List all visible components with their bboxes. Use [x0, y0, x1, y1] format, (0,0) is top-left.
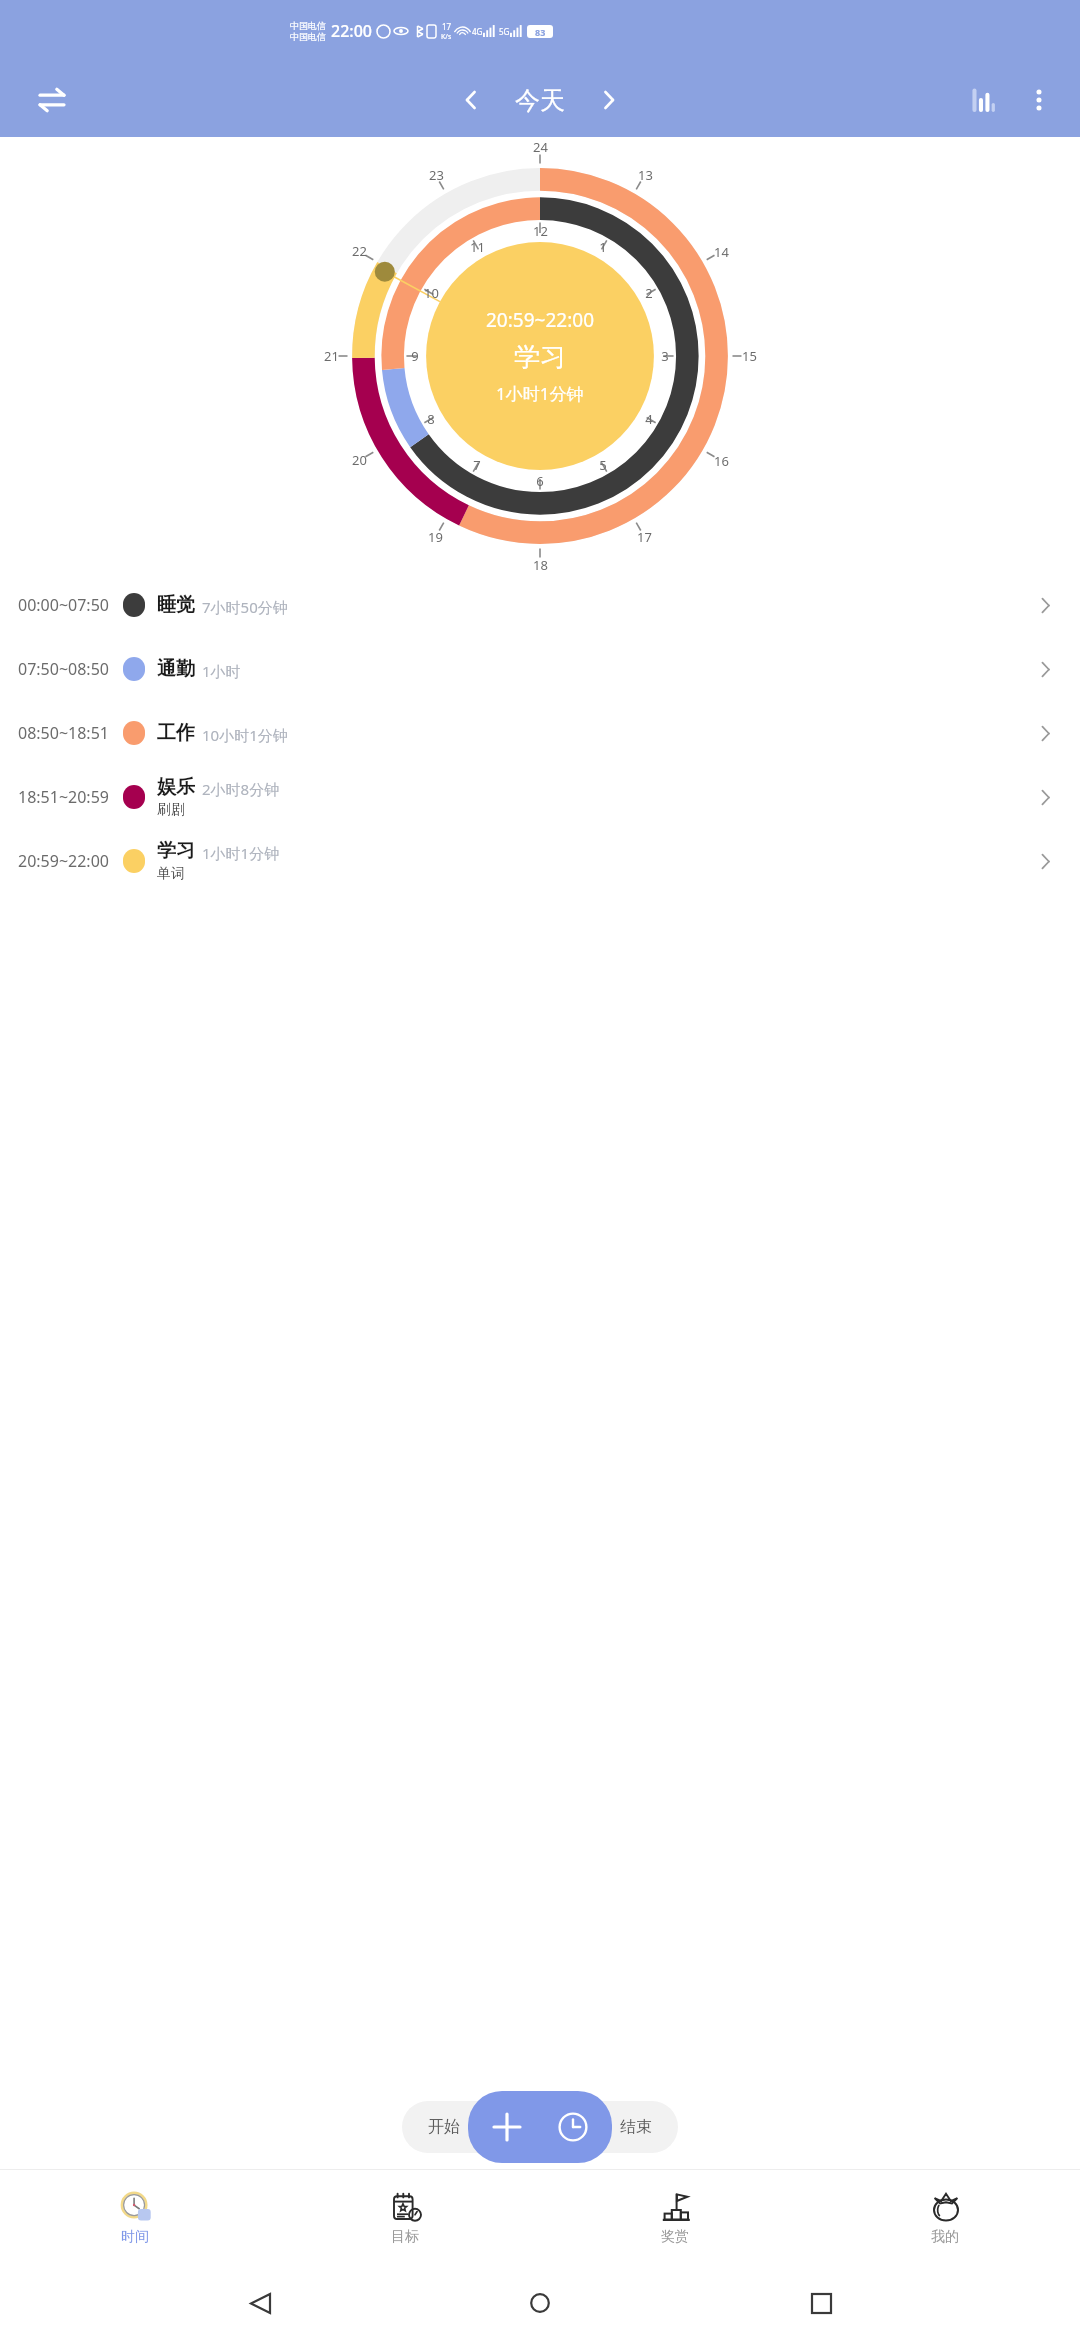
staticText: 单词 — [157, 865, 185, 883]
staticText: 16 — [714, 452, 729, 470]
staticText: 学习 — [157, 839, 195, 863]
button[interactable]: 今天 — [509, 81, 571, 120]
button[interactable]: 08:50~18:51 — [0, 701, 1080, 765]
staticText: 目标 — [391, 2228, 419, 2246]
staticText: 时间 — [121, 2228, 149, 2246]
staticText: 4G — [472, 26, 483, 37]
staticText: 开始 — [428, 2117, 460, 2137]
staticText: 1小时 — [202, 661, 241, 681]
staticText: 20:59~22:00 — [18, 850, 109, 872]
staticText: 今天 — [515, 85, 565, 116]
staticText: 4 — [645, 410, 653, 428]
staticText: 2 — [645, 284, 653, 302]
staticText: 21 — [324, 347, 339, 365]
button[interactable]: Switch view — [30, 78, 74, 122]
staticText: 学习 — [514, 341, 566, 374]
staticText: 20:59~22:00 — [486, 307, 594, 333]
button[interactable]: 07:50~08:50 — [0, 637, 1080, 701]
staticText: 睡觉 — [157, 593, 195, 617]
button[interactable]: 我的 — [810, 2170, 1080, 2266]
staticText: 14 — [714, 243, 729, 261]
staticText: 奖赏 — [661, 2228, 689, 2246]
staticText: 10小时1分钟 — [202, 725, 288, 745]
button[interactable]: 奖赏 — [540, 2170, 810, 2266]
staticText: 1小时1分钟 — [496, 382, 584, 405]
staticText: 我的 — [931, 2228, 959, 2246]
staticText: 1 — [599, 238, 607, 256]
button[interactable]: 18:51~20:59 — [0, 765, 1080, 829]
staticText: 7小时50分钟 — [202, 597, 288, 617]
button[interactable]: 时间 — [0, 2170, 270, 2266]
staticText: 6 — [536, 472, 544, 490]
button[interactable]: Recents — [800, 2282, 842, 2324]
staticText: 5G — [499, 26, 510, 37]
button[interactable]: 开始 — [402, 2117, 468, 2137]
staticText: 00:00~07:50 — [18, 594, 109, 616]
staticText: 刷剧 — [157, 801, 185, 819]
button[interactable]: Home — [519, 2282, 561, 2324]
staticText: 9 — [411, 347, 419, 365]
staticText: 5 — [599, 456, 607, 474]
button[interactable]: 目标 — [270, 2170, 540, 2266]
staticText: K/s — [441, 32, 452, 42]
staticText: 22:00 — [331, 20, 372, 42]
button[interactable]: More options — [1016, 77, 1062, 123]
staticText: 20 — [352, 451, 367, 469]
staticText: 通勤 — [157, 657, 195, 681]
staticText: 17 — [637, 528, 652, 546]
staticText: 工作 — [157, 721, 195, 745]
staticText: 1小时1分钟 — [202, 843, 280, 863]
staticText: 3 — [661, 347, 669, 365]
staticText: 18:51~20:59 — [18, 786, 109, 808]
button[interactable]: Timer — [546, 2100, 600, 2154]
staticText: 中国电信 — [290, 31, 326, 42]
staticText: 中国电信 — [290, 20, 326, 31]
button[interactable]: 00:00~07:50 — [0, 573, 1080, 637]
staticText: 10 — [424, 284, 439, 302]
staticText: 13 — [638, 166, 653, 184]
button[interactable]: Back — [239, 2282, 281, 2324]
staticText: 娱乐 — [157, 775, 195, 799]
button[interactable]: Add record — [480, 2100, 534, 2154]
button[interactable]: Previous day — [447, 76, 495, 124]
staticText: 7 — [473, 456, 481, 474]
button[interactable]: 结束 — [612, 2117, 678, 2137]
staticText: 23 — [429, 166, 444, 184]
staticText: 22 — [352, 242, 367, 260]
staticText: 17 — [442, 21, 452, 32]
staticText: 11 — [470, 238, 485, 256]
staticText: 19 — [428, 528, 443, 546]
staticText: 08:50~18:51 — [18, 722, 109, 744]
staticText: 18 — [533, 556, 548, 574]
button[interactable]: Next day — [585, 76, 633, 124]
staticText: 83 — [535, 26, 546, 38]
staticText: 24 — [533, 138, 548, 156]
staticText: 2小时8分钟 — [202, 779, 280, 799]
staticText: 07:50~08:50 — [18, 658, 109, 680]
button[interactable]: 20:59~22:00 — [0, 829, 1080, 893]
button[interactable]: Statistics — [960, 77, 1006, 123]
staticText: 8 — [427, 410, 435, 428]
staticText: 结束 — [620, 2117, 652, 2137]
staticText: 15 — [742, 347, 757, 365]
staticText: 12 — [533, 222, 548, 240]
